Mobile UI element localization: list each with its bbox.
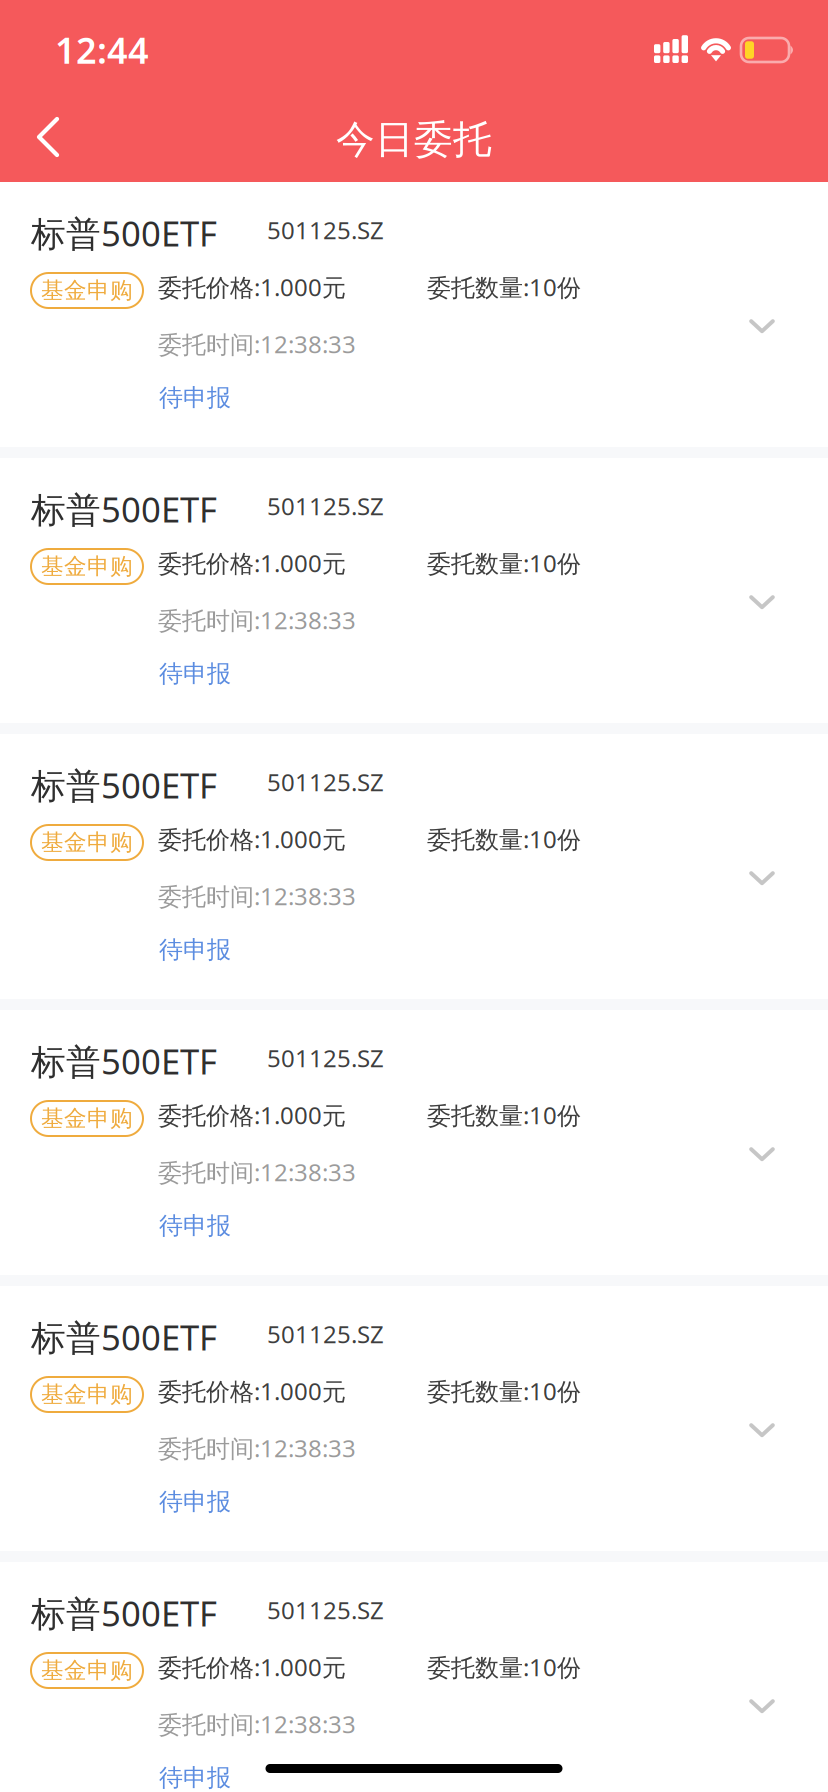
staticText: 标普500ETF [31,1314,217,1360]
staticText: 501125.SZ [267,1042,384,1074]
staticText: 501125.SZ [267,1318,384,1350]
staticText: 今日委托 [336,116,492,163]
staticText: 委托时间:12:38:33 [158,328,356,360]
staticText: 基金申购 [41,1657,133,1684]
staticText: 基金申购 [41,1381,133,1408]
staticText: 委托价格:1.000元 [158,271,346,303]
staticText: 标普500ETF [31,210,217,256]
button[interactable]: 标普500ETF [0,458,828,723]
staticText: 委托时间:12:38:33 [158,1156,356,1188]
staticText: 标普500ETF [31,486,217,532]
staticText: 委托价格:1.000元 [158,547,346,579]
staticText: 基金申购 [41,277,133,304]
staticText: 501125.SZ [267,1594,384,1626]
staticText: 待申报 [159,383,231,412]
staticText: 委托价格:1.000元 [158,823,346,855]
staticText: 委托价格:1.000元 [158,1099,346,1131]
staticText: 委托数量:10份 [427,1651,581,1683]
staticText: 501125.SZ [267,766,384,798]
staticText: 标普500ETF [31,762,217,808]
button[interactable]: 标普500ETF [0,1562,828,1792]
staticText: 委托时间:12:38:33 [158,880,356,912]
staticText: 待申报 [159,659,231,688]
staticText: 待申报 [159,1763,231,1792]
staticText: 委托数量:10份 [427,1099,581,1131]
staticText: 委托时间:12:38:33 [158,1432,356,1464]
button[interactable]: 标普500ETF [0,734,828,999]
button[interactable]: 标普500ETF [0,182,828,447]
staticText: 委托价格:1.000元 [158,1651,346,1683]
staticText: 委托时间:12:38:33 [158,604,356,636]
staticText: 基金申购 [41,829,133,856]
button[interactable]: 返回 [4,95,92,179]
button[interactable]: 标普500ETF [0,1286,828,1551]
staticText: 标普500ETF [31,1590,217,1636]
staticText: 委托数量:10份 [427,271,581,303]
staticText: 待申报 [159,935,231,964]
staticText: 标普500ETF [31,1038,217,1084]
staticText: 待申报 [159,1487,231,1516]
staticText: 委托价格:1.000元 [158,1375,346,1407]
staticText: 501125.SZ [267,490,384,522]
staticText: 基金申购 [41,553,133,580]
staticText: 待申报 [159,1211,231,1240]
staticText: 501125.SZ [267,214,384,246]
staticText: 12:44 [55,26,149,74]
staticText: 委托时间:12:38:33 [158,1708,356,1740]
button[interactable]: 标普500ETF [0,1010,828,1275]
staticText: 委托数量:10份 [427,823,581,855]
staticText: 委托数量:10份 [427,547,581,579]
staticText: 基金申购 [41,1105,133,1132]
staticText: 委托数量:10份 [427,1375,581,1407]
